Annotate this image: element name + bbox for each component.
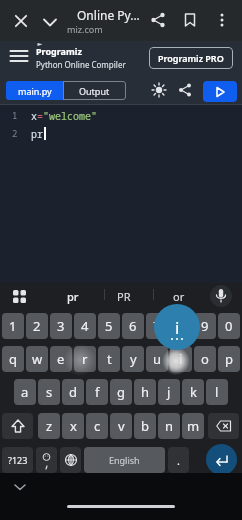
button[interactable]: i	[170, 346, 192, 372]
button[interactable]	[210, 285, 232, 307]
staticText: o	[201, 350, 209, 368]
staticText: k	[190, 383, 197, 401]
button[interactable]: 2	[26, 313, 48, 339]
button[interactable]: q	[2, 346, 24, 372]
staticText: 9	[201, 317, 209, 335]
button[interactable]	[174, 79, 196, 101]
button[interactable]: x	[62, 413, 84, 439]
button[interactable]: c	[86, 413, 108, 439]
button[interactable]	[38, 10, 62, 34]
button[interactable]	[36, 447, 57, 473]
button[interactable]: e	[50, 346, 72, 372]
button[interactable]	[8, 45, 30, 67]
staticText: l	[215, 383, 219, 401]
button[interactable]: Output	[63, 81, 126, 100]
button[interactable]	[9, 9, 33, 33]
staticText: z	[46, 417, 53, 435]
staticText: pr	[31, 127, 43, 141]
staticText: 5	[105, 317, 113, 335]
button[interactable]: 8	[170, 313, 192, 339]
button[interactable]: t	[98, 346, 120, 372]
staticText: pr	[67, 289, 79, 304]
staticText: p	[225, 350, 233, 368]
button[interactable]: 7	[146, 313, 168, 339]
button[interactable]: n	[158, 413, 180, 439]
button[interactable]: 5	[98, 313, 120, 339]
button[interactable]: g	[110, 379, 132, 405]
staticText: f	[95, 383, 100, 401]
staticText: main.py	[18, 85, 52, 97]
button[interactable]: h	[134, 379, 156, 405]
button[interactable]: 9	[194, 313, 216, 339]
button[interactable]: pr	[40, 283, 106, 310]
staticText: u	[153, 350, 162, 368]
staticText: d	[69, 383, 77, 401]
button[interactable]: 0	[218, 313, 240, 339]
button[interactable]: .	[168, 447, 189, 473]
staticText: Python Online Compiler	[36, 59, 126, 70]
button[interactable]: PR	[104, 283, 144, 310]
button[interactable]: d	[62, 379, 84, 405]
staticText: 4	[81, 317, 89, 335]
button[interactable]: 6	[122, 313, 144, 339]
button[interactable]: u	[146, 346, 168, 372]
staticText: x	[70, 417, 77, 435]
button[interactable]	[10, 479, 30, 495]
button[interactable]: k	[182, 379, 204, 405]
staticText: w	[32, 350, 43, 368]
button[interactable]	[2, 413, 33, 439]
button[interactable]: 3	[50, 313, 72, 339]
staticText: i	[175, 316, 180, 339]
button[interactable]: w	[26, 346, 48, 372]
button[interactable]	[208, 413, 239, 439]
staticText: ?123	[8, 454, 28, 466]
button[interactable]: z	[38, 413, 60, 439]
button[interactable]: Programiz PRO	[149, 47, 233, 69]
staticText: .	[177, 453, 180, 468]
staticText: m	[187, 417, 200, 435]
staticText: c	[94, 417, 101, 435]
staticText: e	[57, 350, 65, 368]
button[interactable]: a	[14, 379, 36, 405]
button[interactable]: j	[158, 379, 180, 405]
button[interactable]	[11, 288, 27, 304]
staticText: 1	[9, 317, 17, 335]
button[interactable]	[203, 81, 237, 102]
staticText: 2	[33, 317, 41, 335]
button[interactable]	[146, 8, 170, 32]
staticText: 8	[177, 317, 185, 335]
staticText: 3	[57, 317, 65, 335]
button[interactable]: p	[218, 346, 240, 372]
button[interactable]	[206, 444, 237, 475]
button[interactable]: o	[194, 346, 216, 372]
button[interactable]: v	[110, 413, 132, 439]
staticText: v	[118, 417, 125, 435]
staticText: English	[109, 454, 140, 466]
button[interactable]: y	[122, 346, 144, 372]
button[interactable]: s	[38, 379, 60, 405]
staticText: b	[141, 417, 149, 435]
staticText: Online Py...	[77, 7, 140, 23]
button[interactable]	[60, 447, 81, 473]
button[interactable]: or	[154, 283, 204, 310]
button[interactable]: 1	[2, 313, 24, 339]
button[interactable]: f	[86, 379, 108, 405]
button[interactable]: l	[206, 379, 228, 405]
button[interactable]: r	[74, 346, 96, 372]
button[interactable]	[178, 8, 202, 32]
button[interactable]	[210, 8, 234, 32]
button[interactable]: main.py	[6, 81, 63, 100]
button[interactable]: b	[134, 413, 156, 439]
staticText: PR	[117, 289, 131, 304]
button[interactable]: 4	[74, 313, 96, 339]
staticText: i	[179, 350, 183, 368]
staticText: Programiz PRO	[158, 52, 224, 64]
button[interactable]: ?123	[2, 447, 33, 473]
button[interactable]	[148, 79, 170, 101]
staticText: n	[165, 417, 174, 435]
button[interactable]: English	[84, 447, 165, 473]
button[interactable]: m	[182, 413, 204, 439]
staticText: y	[130, 350, 137, 368]
staticText: Output	[79, 85, 110, 97]
staticText: s	[46, 383, 53, 401]
